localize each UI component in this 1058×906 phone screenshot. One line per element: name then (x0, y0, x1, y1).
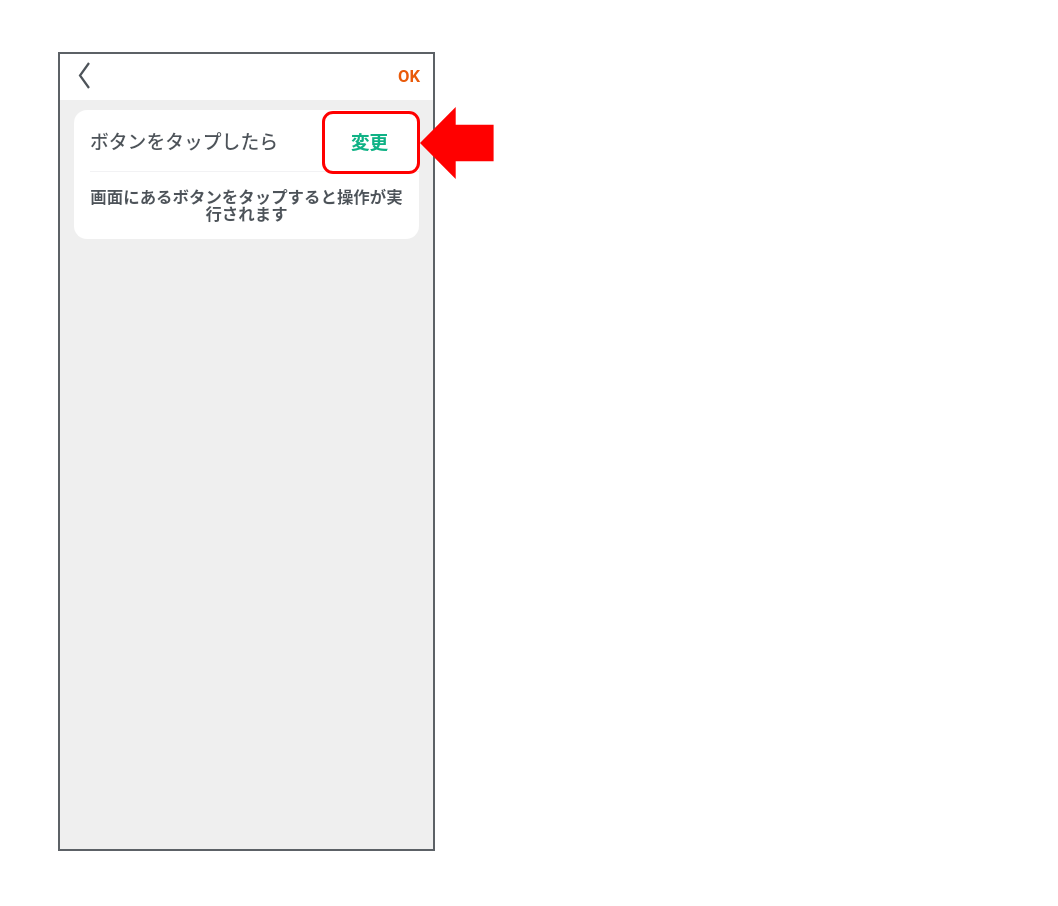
staticText: 画面にあるボタンをタップすると操作が実行されます (88, 184, 405, 224)
staticText: OK (398, 67, 420, 86)
button[interactable]: Back (62, 53, 106, 97)
staticText: 変更 (351, 127, 389, 154)
button[interactable]: ボタンをタップしたら (74, 110, 419, 171)
staticText: ボタンをタップしたら (90, 127, 278, 154)
button[interactable]: OK (384, 55, 435, 98)
